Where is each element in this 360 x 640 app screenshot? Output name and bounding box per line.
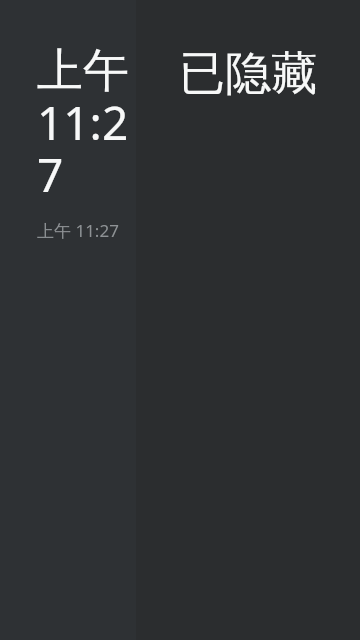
staticText: 上午11:27 [37,42,130,205]
button[interactable]: 已隐藏 [136,0,360,640]
button[interactable]: 上午11:27 [0,0,136,640]
staticText: 上午 11:27 [37,219,119,242]
staticText: 已隐藏 [179,45,317,103]
